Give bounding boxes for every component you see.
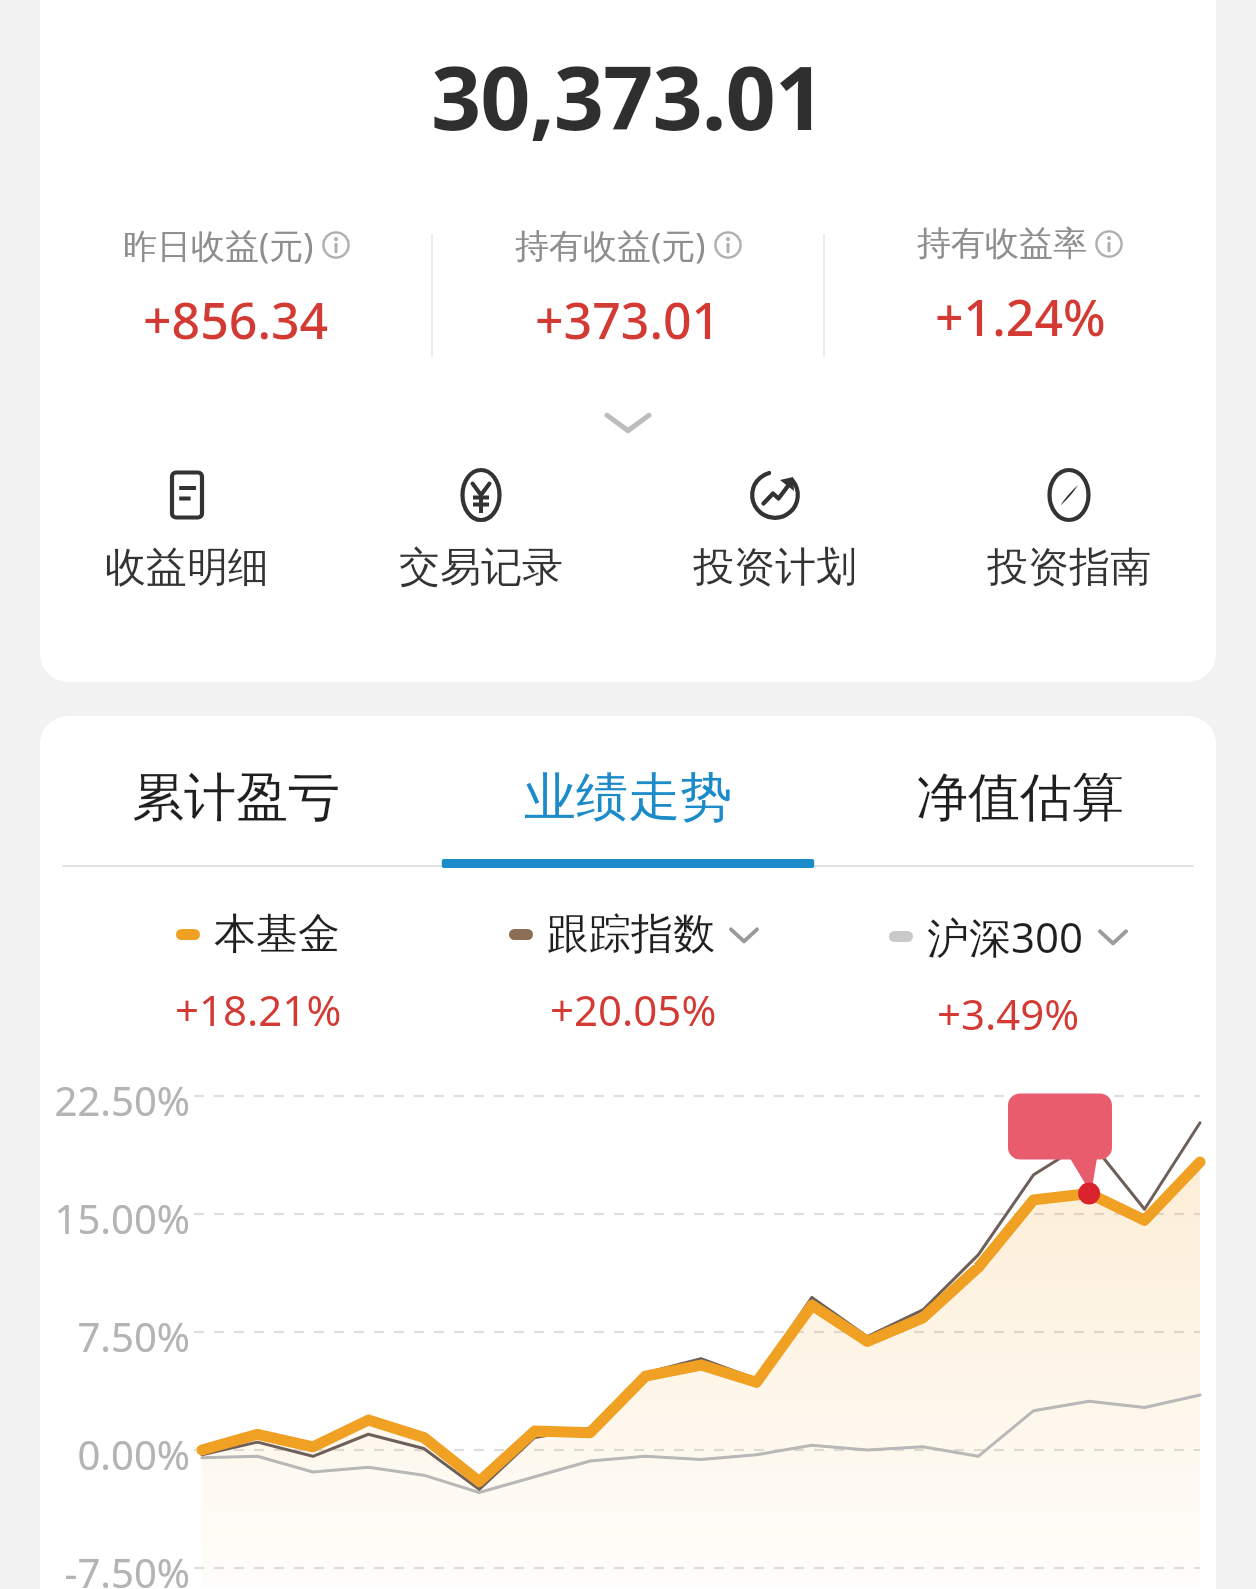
staticText: +20.05%	[550, 981, 717, 1038]
staticText: 收益明细	[105, 542, 269, 594]
button[interactable]: 累计盈亏	[40, 750, 432, 846]
button[interactable]: 跟踪指数	[446, 908, 821, 1038]
staticText: 沪深300	[927, 908, 1084, 965]
button[interactable]: 收益明细	[40, 470, 334, 594]
staticText: 昨日收益(元)	[123, 222, 314, 268]
staticText: 15.00%	[50, 1191, 190, 1245]
staticText: 7.50%	[50, 1309, 190, 1363]
button[interactable]: 展开更多	[40, 396, 1216, 448]
staticText: 30,373.01	[431, 36, 825, 156]
button[interactable]: 本基金	[70, 908, 446, 1038]
button[interactable]: 沪深300	[821, 908, 1196, 1042]
staticText: +1.24%	[935, 283, 1106, 351]
staticText: 持有收益(元)	[515, 222, 706, 268]
staticText: 投资计划	[693, 542, 857, 594]
button[interactable]: 交易记录	[334, 470, 628, 594]
staticText: 累计盈亏	[132, 765, 340, 831]
staticText: 买入	[892, 1096, 972, 1146]
staticText: 业绩走势	[524, 765, 732, 831]
button[interactable]: 昨日收益(元)	[40, 222, 432, 362]
staticText: +856.34	[143, 286, 329, 354]
button[interactable]: 业绩走势	[432, 750, 824, 846]
button[interactable]: 净值估算	[824, 750, 1216, 846]
staticText: 22.50%	[50, 1073, 190, 1127]
staticText: 本基金	[214, 908, 340, 961]
staticText: 交易记录	[399, 542, 563, 594]
staticText: +18.21%	[175, 981, 342, 1038]
button[interactable]: 持有收益(元)	[432, 222, 824, 362]
staticText: +3.49%	[937, 985, 1080, 1042]
staticText: -7.50%	[50, 1545, 190, 1589]
button[interactable]: 投资计划	[628, 470, 922, 594]
button[interactable]: 投资指南	[922, 470, 1216, 594]
staticText: 净值估算	[916, 765, 1124, 831]
staticText: 跟踪指数	[547, 908, 715, 961]
staticText: 0.00%	[50, 1427, 190, 1481]
staticText: +373.01	[535, 286, 721, 354]
button[interactable]: 持有收益率	[824, 222, 1216, 362]
staticText: 投资指南	[987, 542, 1151, 594]
staticText: 持有收益率	[917, 222, 1087, 265]
